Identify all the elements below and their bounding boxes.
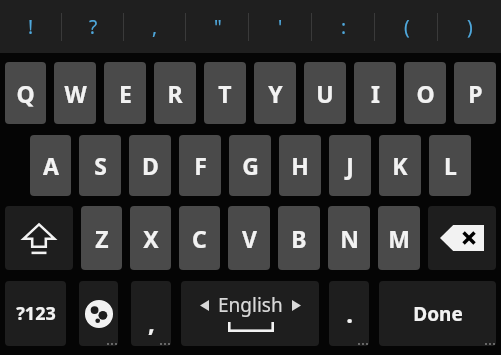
staticText: Z bbox=[95, 223, 109, 254]
button[interactable]: , bbox=[131, 281, 171, 346]
button[interactable]: C bbox=[179, 206, 220, 270]
staticText: L bbox=[444, 150, 457, 181]
button[interactable]: F bbox=[179, 135, 221, 196]
button[interactable]: Y bbox=[254, 62, 296, 124]
button[interactable]: Change input language bbox=[79, 281, 118, 346]
button[interactable]: S bbox=[79, 135, 121, 196]
staticText: R bbox=[167, 78, 183, 109]
staticText: , bbox=[152, 14, 158, 40]
button[interactable]: I bbox=[354, 62, 396, 124]
button[interactable]: K bbox=[379, 135, 421, 196]
staticText: P bbox=[468, 78, 483, 109]
button[interactable]: N bbox=[328, 206, 370, 270]
staticText: ?123 bbox=[16, 301, 56, 326]
staticText: H bbox=[291, 150, 309, 181]
button[interactable]: M bbox=[378, 206, 420, 270]
staticText: X bbox=[143, 223, 159, 254]
staticText: S bbox=[94, 150, 107, 181]
staticText: ' bbox=[278, 14, 283, 40]
button[interactable]: G bbox=[229, 135, 271, 196]
button[interactable]: U bbox=[304, 62, 346, 124]
button[interactable]: J bbox=[329, 135, 371, 196]
staticText: M bbox=[388, 223, 410, 254]
staticText: J bbox=[346, 150, 354, 181]
staticText: W bbox=[64, 78, 87, 109]
button[interactable]: : bbox=[312, 0, 375, 53]
staticText: K bbox=[392, 150, 408, 181]
button[interactable]: ! bbox=[0, 0, 62, 53]
button[interactable]: P bbox=[454, 62, 496, 124]
button[interactable]: Z bbox=[81, 206, 122, 270]
button[interactable]: Q bbox=[5, 62, 46, 124]
button[interactable]: ? bbox=[62, 0, 124, 53]
button[interactable]: Shift bbox=[5, 206, 73, 270]
staticText: . bbox=[346, 297, 353, 330]
button[interactable]: A bbox=[30, 135, 71, 196]
button[interactable]: L bbox=[429, 135, 471, 196]
staticText: I bbox=[371, 78, 380, 109]
staticText: O bbox=[416, 78, 435, 109]
staticText: Done bbox=[413, 301, 463, 327]
staticText: B bbox=[291, 223, 307, 254]
button[interactable]: Done bbox=[379, 281, 496, 346]
staticText: English bbox=[218, 292, 283, 318]
button[interactable]: X bbox=[130, 206, 171, 270]
staticText: Y bbox=[268, 78, 283, 109]
staticText: G bbox=[242, 150, 259, 181]
staticText: N bbox=[340, 223, 359, 254]
button[interactable]: Backspace bbox=[428, 206, 496, 270]
staticText: ( bbox=[404, 14, 410, 40]
staticText: Q bbox=[16, 78, 35, 109]
staticText: U bbox=[316, 78, 334, 109]
button[interactable]: B bbox=[278, 206, 320, 270]
button[interactable]: D bbox=[129, 135, 171, 196]
staticText: , bbox=[148, 306, 155, 339]
staticText: F bbox=[194, 150, 207, 181]
staticText: A bbox=[43, 150, 59, 181]
button[interactable]: ' bbox=[249, 0, 312, 53]
button[interactable]: . bbox=[329, 281, 369, 346]
staticText: " bbox=[214, 14, 222, 40]
button[interactable]: ( bbox=[375, 0, 438, 53]
staticText: T bbox=[218, 78, 232, 109]
button[interactable]: , bbox=[124, 0, 186, 53]
staticText: : bbox=[341, 14, 347, 40]
staticText: E bbox=[119, 78, 132, 109]
button[interactable]: T bbox=[204, 62, 246, 124]
button[interactable]: ?123 bbox=[5, 281, 66, 346]
button[interactable]: E bbox=[104, 62, 146, 124]
staticText: ? bbox=[89, 14, 98, 40]
button[interactable]: H bbox=[279, 135, 321, 196]
staticText: V bbox=[242, 223, 257, 254]
button[interactable]: R bbox=[154, 62, 196, 124]
button[interactable]: " bbox=[186, 0, 249, 53]
button[interactable]: W bbox=[54, 62, 96, 124]
staticText: ! bbox=[28, 14, 34, 40]
staticText: D bbox=[142, 150, 159, 181]
staticText: C bbox=[192, 223, 207, 254]
staticText: ) bbox=[467, 14, 473, 40]
button[interactable]: Space bbox=[181, 281, 319, 346]
button[interactable]: ) bbox=[438, 0, 501, 53]
button[interactable]: V bbox=[228, 206, 270, 270]
button[interactable]: O bbox=[404, 62, 446, 124]
